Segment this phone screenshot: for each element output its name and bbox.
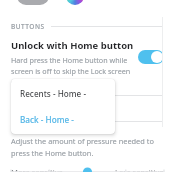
staticText: screen is off to skip the Lock screen an…	[11, 66, 134, 76]
staticText: Recents - Home - Back	[20, 88, 106, 99]
staticText: directly to the Home screen.	[11, 77, 106, 87]
button[interactable]: Unlock with Home button	[0, 39, 172, 87]
button[interactable]: Color sphere	[59, 0, 91, 5]
staticText: Unlock with Home button	[11, 39, 134, 52]
staticText: press the Home button.	[11, 148, 94, 158]
staticText: Back - Home - Recents	[20, 114, 106, 125]
staticText: BUTTONS	[11, 22, 45, 31]
button[interactable]: Account avatar	[17, 0, 49, 5]
staticText: Hard press the Home button while the	[11, 55, 134, 65]
staticText: Adjust the amount of pressure needed to …	[11, 136, 164, 146]
button[interactable]: Recents - Home - Back	[11, 79, 115, 107]
staticText: Less sensitive	[115, 167, 164, 172]
staticText: More sensitive	[11, 167, 63, 172]
button[interactable]: Back - Home - Recents	[11, 107, 115, 134]
button[interactable]: Unlock with Home button toggle, on	[138, 50, 164, 64]
